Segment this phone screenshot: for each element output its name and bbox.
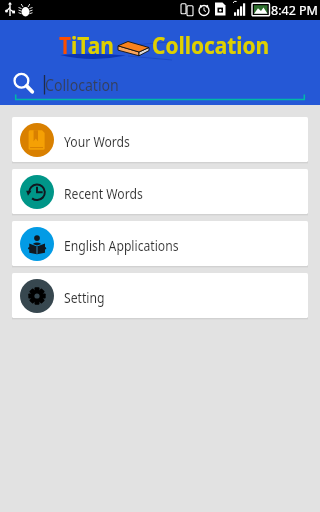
staticText: Collocation	[152, 28, 269, 61]
staticText: 8:42 PM	[271, 2, 318, 19]
button[interactable]: Recent Words	[12, 169, 308, 214]
staticText: Setting	[64, 288, 105, 307]
staticText: Your Words	[64, 132, 130, 151]
staticText: Recent Words	[64, 184, 143, 203]
staticText: Collocation	[45, 74, 119, 96]
staticText: English Applications	[64, 236, 179, 255]
button[interactable]: Your Words	[12, 117, 308, 162]
button[interactable]: Setting	[12, 273, 308, 318]
button[interactable]: English Applications	[12, 221, 308, 266]
staticText: TiTan	[59, 28, 114, 61]
